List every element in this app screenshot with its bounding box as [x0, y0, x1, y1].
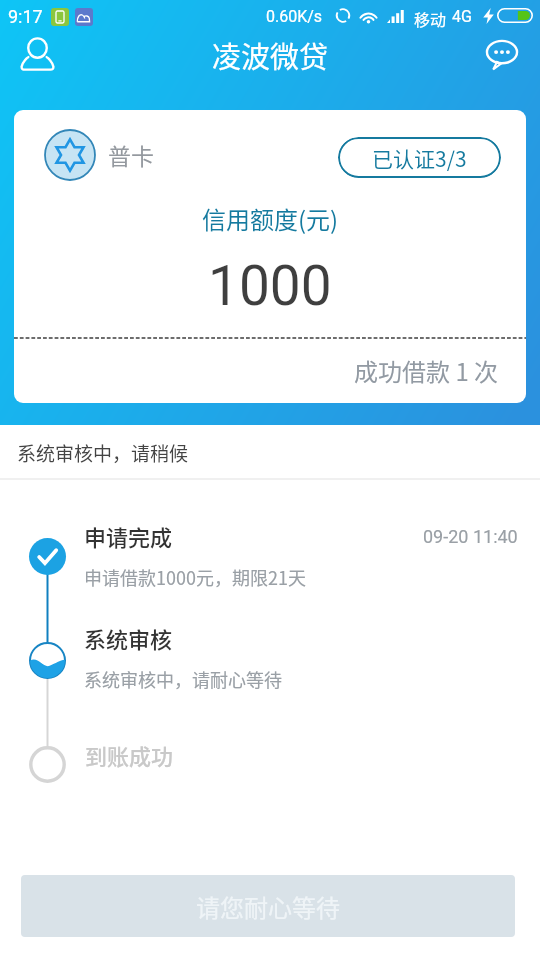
staticText: 申请借款1000元，期限21天	[84, 564, 306, 590]
staticText: 到账成功	[85, 739, 174, 771]
staticText: 移动	[414, 7, 447, 30]
button[interactable]: Profile	[9, 27, 65, 83]
staticText: 成功借款 1 次	[354, 353, 499, 388]
staticText: 请您耐心等待	[196, 889, 340, 924]
staticText: 0.60K/s	[266, 7, 323, 26]
button[interactable]: 已认证3/3	[338, 137, 501, 178]
staticText: 已认证3/3	[372, 143, 467, 173]
staticText: 09-20 11:40	[423, 526, 518, 547]
staticText: 普卡	[108, 138, 154, 171]
staticText: 4G	[452, 7, 472, 26]
staticText: 申请完成	[84, 520, 173, 552]
staticText: 凌波微贷	[212, 34, 329, 76]
staticText: 系统审核中，请稍候	[17, 439, 189, 467]
staticText: 系统审核中，请耐心等待	[84, 666, 282, 692]
button[interactable]: 请您耐心等待	[21, 875, 515, 937]
staticText: 9:17	[8, 6, 43, 27]
button[interactable]: Customer service chat	[474, 27, 530, 83]
staticText: 系统审核	[84, 622, 173, 654]
staticText: 信用额度(元)	[202, 201, 339, 236]
staticText: 1000	[208, 254, 332, 318]
